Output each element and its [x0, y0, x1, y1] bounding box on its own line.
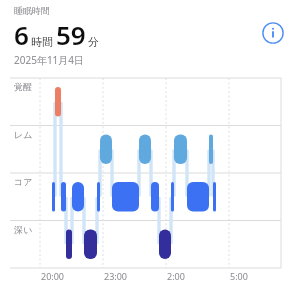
staticText: 23:00: [104, 270, 128, 282]
staticText: 深い: [14, 224, 33, 235]
staticText: 5:00: [230, 270, 248, 282]
staticText: 59: [56, 17, 86, 52]
staticText: 分: [88, 35, 99, 49]
staticText: 覚醒: [14, 81, 32, 92]
staticText: 睡眠時間: [14, 5, 50, 16]
staticText: 時間: [31, 35, 53, 49]
staticText: 2025年11月4日: [14, 53, 85, 67]
staticText: 6: [14, 17, 29, 52]
staticText: レム: [14, 129, 33, 140]
button[interactable]: 詳細情報: [260, 20, 286, 46]
staticText: コア: [14, 176, 33, 187]
staticText: 20:00: [41, 270, 65, 282]
staticText: 2:00: [167, 270, 185, 282]
